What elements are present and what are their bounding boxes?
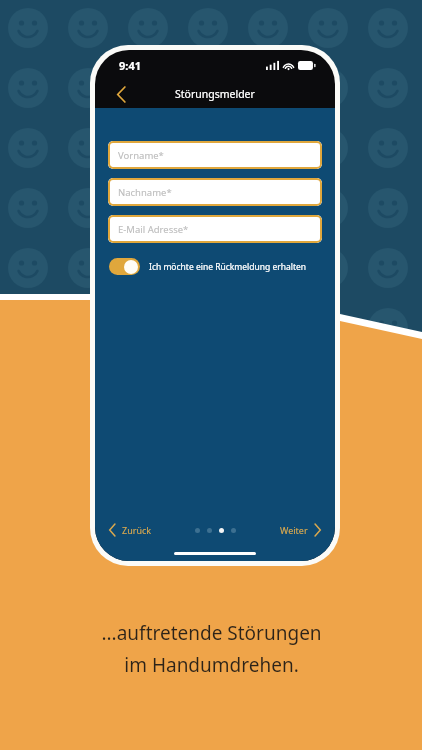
staticText: Weiter <box>280 524 308 536</box>
button[interactable]: Zurück <box>107 80 135 108</box>
button[interactable]: Vorname* <box>108 141 322 169</box>
button[interactable]: E-Mail Adresse* <box>108 215 322 243</box>
staticText: 9:41 <box>119 58 141 73</box>
button[interactable]: Nachname* <box>108 178 322 206</box>
staticText: E-Mail Adresse* <box>118 223 189 236</box>
button[interactable]: Weiter <box>276 520 325 540</box>
staticText: Vorname* <box>118 149 164 162</box>
button[interactable]: Zurück <box>105 520 156 540</box>
staticText: Störungsmelder <box>175 87 255 101</box>
staticText: im Handumdrehen. <box>124 652 299 678</box>
button[interactable]: Ich möchte eine Rückmeldung erhalten <box>109 258 321 275</box>
staticText: ...auftretende Störungen <box>101 620 322 646</box>
staticText: Nachname* <box>118 186 172 199</box>
staticText: Zurück <box>122 524 152 536</box>
staticText: Ich möchte eine Rückmeldung erhalten <box>149 261 307 273</box>
